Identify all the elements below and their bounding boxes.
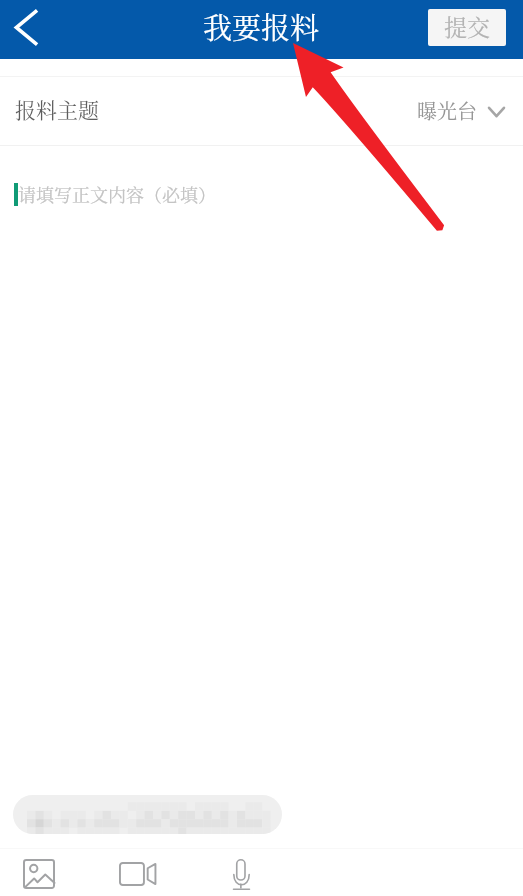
button[interactable]: Back: [0, 0, 54, 59]
staticText: 我要报料: [203, 6, 320, 48]
staticText: 提交: [444, 10, 490, 43]
button[interactable]: 提交: [428, 9, 506, 46]
staticText: 报料主题: [15, 94, 99, 124]
button[interactable]: Add image: [18, 853, 60, 895]
staticText: 请填写正文内容（必填）: [18, 181, 216, 207]
staticText: 曝光台: [417, 96, 477, 125]
button[interactable]: 报料主题: [0, 59, 523, 145]
button[interactable]: [13, 795, 282, 834]
button[interactable]: Record audio: [220, 853, 262, 895]
button[interactable]: Record video: [116, 853, 158, 895]
